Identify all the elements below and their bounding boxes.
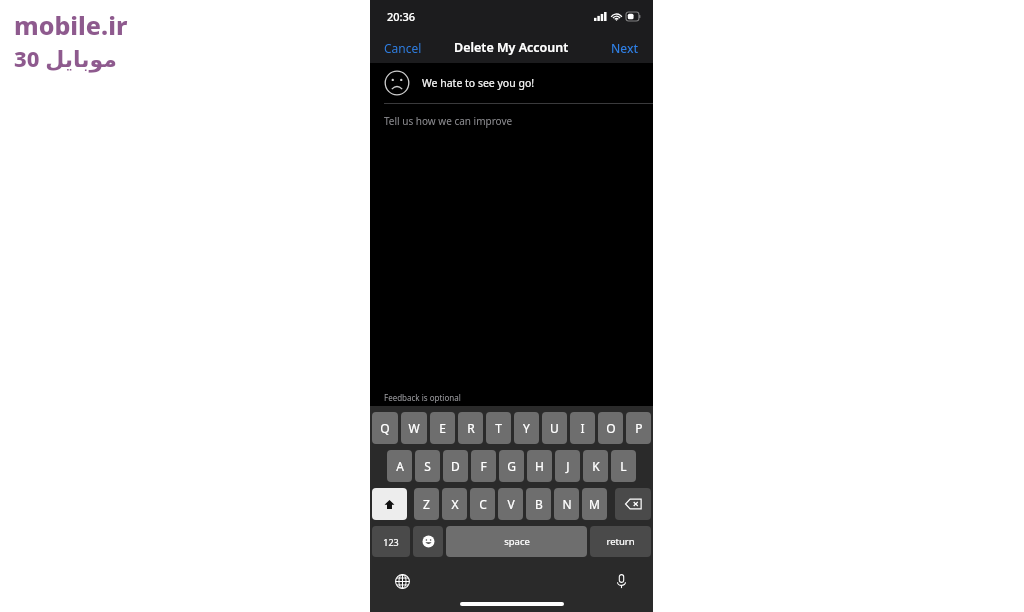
staticText: X	[451, 496, 459, 512]
button[interactable]: E	[430, 412, 455, 444]
button[interactable]: T	[486, 412, 511, 444]
button[interactable]: return	[590, 526, 651, 557]
button[interactable]: Emoji keyboard	[413, 526, 443, 557]
button[interactable]: I	[570, 412, 595, 444]
staticText: Tell us how we can improve	[384, 114, 513, 128]
staticText: U	[550, 420, 559, 436]
staticText: D	[451, 458, 460, 474]
staticText: Feedback is optional	[384, 392, 461, 403]
staticText: mobile.ir	[14, 8, 128, 42]
staticText: M	[589, 496, 600, 512]
button[interactable]: S	[415, 450, 440, 482]
staticText: N	[562, 496, 572, 512]
staticText: F	[480, 458, 487, 474]
button[interactable]: Next	[597, 34, 653, 62]
button[interactable]: K	[583, 450, 608, 482]
staticText: T	[495, 420, 502, 436]
button[interactable]: R	[458, 412, 483, 444]
staticText: P	[635, 420, 643, 436]
button[interactable]: H	[527, 450, 552, 482]
staticText: L	[620, 458, 627, 474]
button[interactable]: C	[470, 488, 495, 520]
button[interactable]: Shift	[372, 488, 407, 520]
staticText: C	[479, 496, 487, 512]
button[interactable]: B	[526, 488, 551, 520]
button[interactable]: U	[542, 412, 567, 444]
button[interactable]: Q	[372, 412, 398, 444]
staticText: 123	[383, 536, 399, 548]
staticText: B	[535, 496, 543, 512]
staticText: V	[507, 496, 515, 512]
button[interactable]: Y	[514, 412, 539, 444]
staticText: J	[566, 458, 570, 474]
button[interactable]: O	[598, 412, 623, 444]
staticText: I	[580, 420, 585, 436]
staticText: G	[507, 458, 516, 474]
staticText: O	[606, 420, 616, 436]
button[interactable]: W	[401, 412, 427, 444]
staticText: Y	[523, 420, 530, 436]
staticText: Cancel	[384, 40, 422, 56]
staticText: 20:36	[387, 9, 416, 24]
staticText: Delete My Account	[454, 39, 569, 56]
staticText: W	[408, 420, 420, 436]
staticText: موبایل 30	[14, 43, 117, 73]
button[interactable]: 123	[372, 526, 410, 557]
button[interactable]: Cancel	[370, 34, 436, 62]
staticText: return	[606, 535, 635, 548]
staticText: Z	[423, 496, 430, 512]
button[interactable]: G	[499, 450, 524, 482]
button[interactable]: X	[442, 488, 467, 520]
button[interactable]: J	[555, 450, 580, 482]
button[interactable]: L	[611, 450, 636, 482]
staticText: Q	[380, 420, 390, 436]
staticText: R	[467, 420, 475, 436]
button[interactable]: space	[446, 526, 587, 557]
staticText: K	[592, 458, 600, 474]
button[interactable]: M	[582, 488, 607, 520]
staticText: A	[396, 458, 404, 474]
staticText: E	[439, 420, 446, 436]
staticText: H	[535, 458, 544, 474]
staticText: We hate to see you go!	[422, 76, 535, 90]
button[interactable]: D	[443, 450, 468, 482]
button[interactable]: Tell us how we can improve	[370, 104, 653, 388]
button[interactable]: Dictation	[609, 569, 633, 593]
button[interactable]: Change keyboard language	[390, 569, 414, 593]
button[interactable]: P	[626, 412, 651, 444]
staticText: Next	[611, 40, 639, 56]
button[interactable]: F	[471, 450, 496, 482]
staticText: S	[424, 458, 431, 474]
button[interactable]: A	[387, 450, 412, 482]
button[interactable]: Z	[414, 488, 439, 520]
button[interactable]: V	[498, 488, 523, 520]
button[interactable]: N	[554, 488, 579, 520]
button[interactable]: Backspace	[615, 488, 651, 520]
staticText: space	[504, 535, 530, 548]
